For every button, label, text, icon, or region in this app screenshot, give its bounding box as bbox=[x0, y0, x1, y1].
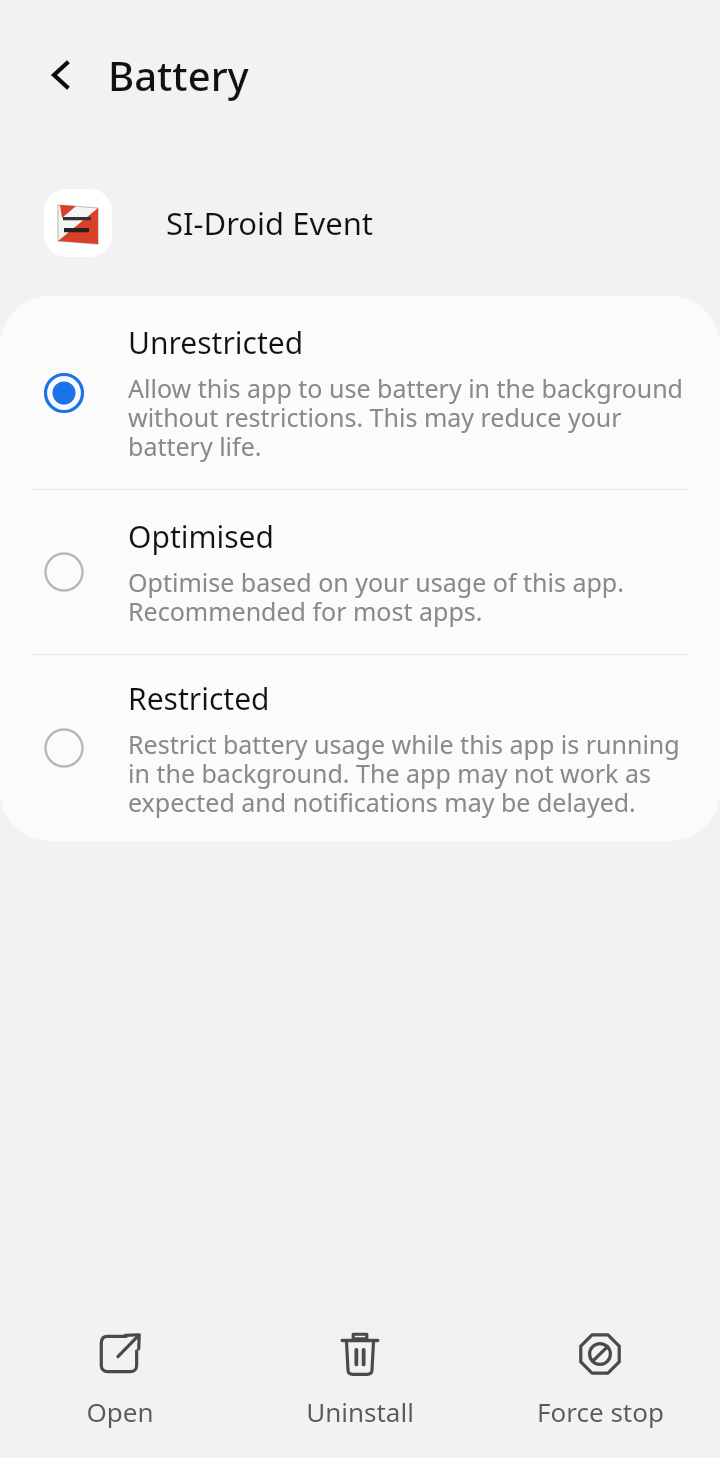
staticText: SI-Droid Event bbox=[166, 202, 374, 244]
staticText: Allow this app to use battery in the bac… bbox=[128, 371, 684, 463]
staticText: Open bbox=[86, 1394, 154, 1429]
staticText: Force stop bbox=[537, 1394, 664, 1429]
button[interactable]: Uninstall bbox=[240, 1316, 480, 1441]
staticText: Restricted bbox=[128, 678, 270, 719]
staticText: Restrict battery usage while this app is… bbox=[128, 727, 684, 819]
staticText: Unrestricted bbox=[128, 322, 304, 363]
button[interactable]: Restricted bbox=[0, 655, 720, 841]
staticText: Optimise based on your usage of this app… bbox=[128, 565, 684, 628]
button[interactable]: Back bbox=[30, 43, 94, 107]
button[interactable]: Unrestricted bbox=[0, 296, 720, 489]
button[interactable]: Force stop bbox=[480, 1316, 720, 1441]
button[interactable]: Optimised bbox=[0, 490, 720, 654]
staticText: Optimised bbox=[128, 516, 274, 557]
staticText: Uninstall bbox=[306, 1394, 414, 1429]
button[interactable]: Open bbox=[0, 1316, 240, 1441]
staticText: Battery bbox=[108, 48, 249, 102]
